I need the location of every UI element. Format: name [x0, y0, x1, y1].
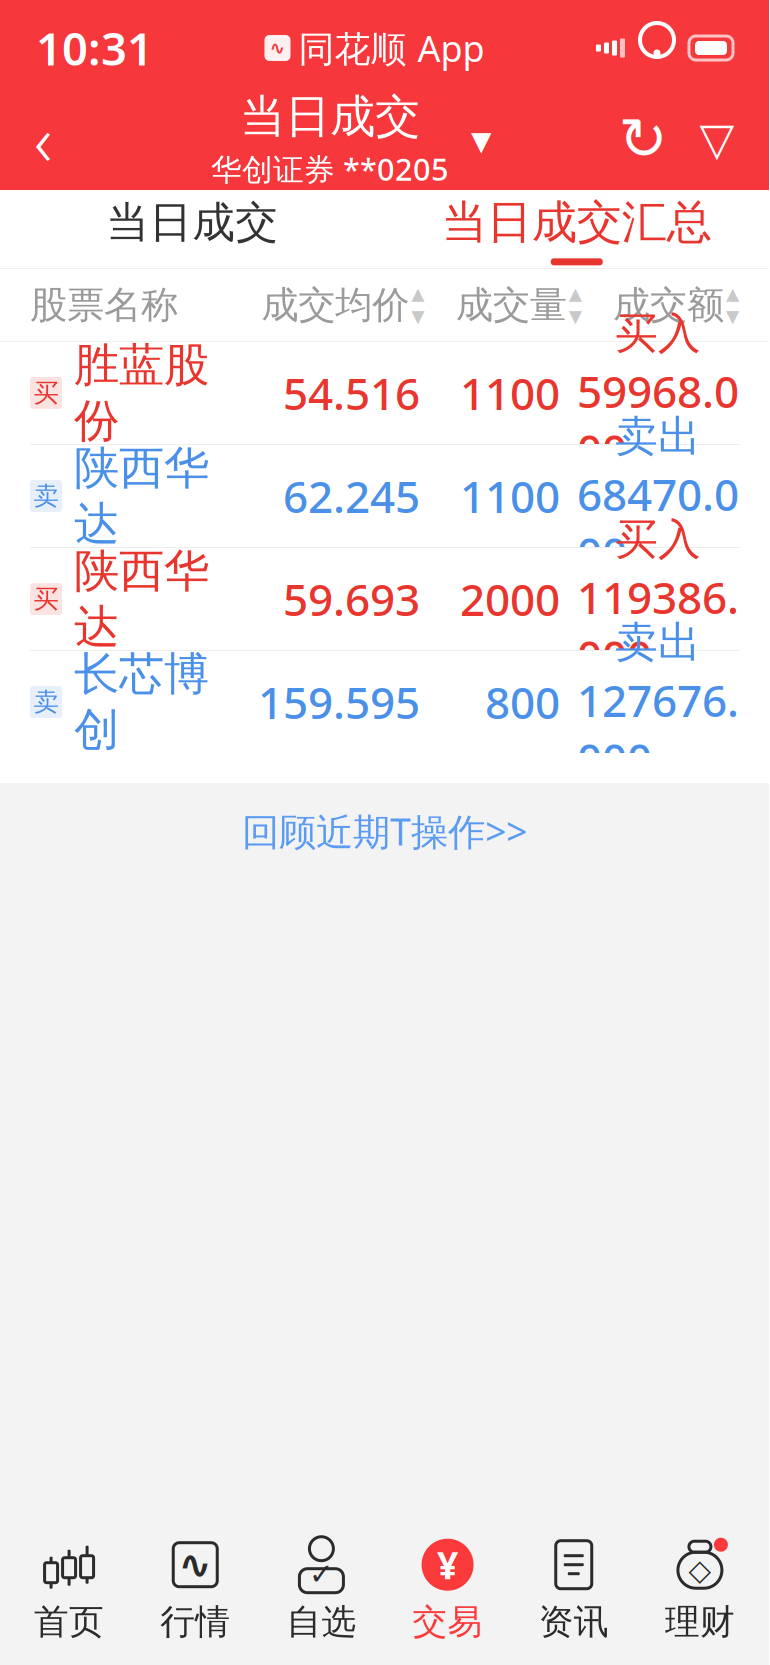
button[interactable]: 卖 [0, 651, 769, 753]
staticText: 卖 [33, 480, 58, 511]
staticText: 卖出 [615, 410, 701, 463]
staticText: 当日成交 [106, 196, 278, 249]
staticText: 买 [33, 583, 58, 614]
staticText: ∿ [269, 37, 285, 59]
staticText: 陕西华达 [74, 440, 209, 552]
staticText: ▼ [569, 306, 582, 326]
staticText: ▼ [471, 126, 492, 156]
staticText: ▼ [411, 306, 424, 326]
button[interactable]: ◇ [637, 1532, 763, 1648]
button[interactable]: 当日成交 [0, 190, 384, 268]
staticText: ◇ [688, 1554, 711, 1587]
staticText: 1100 [460, 364, 560, 422]
staticText: 119386.000 [577, 568, 739, 685]
staticText: 800 [485, 673, 560, 731]
staticText: 买入 [615, 513, 701, 566]
staticText: ∿ [178, 1542, 212, 1587]
button[interactable]: 卖 [0, 445, 769, 547]
staticText: 交易 [413, 1601, 483, 1643]
button[interactable]: 刷新 [617, 109, 669, 169]
staticText: 59968.000 [577, 362, 739, 479]
staticText: 2000 [460, 570, 560, 628]
button[interactable]: 买 [0, 548, 769, 650]
staticText: 成交额 [613, 282, 724, 328]
staticText: 长芯博创 [74, 646, 209, 758]
staticText: 127676.000 [577, 671, 739, 788]
button[interactable]: 当日成交汇总 [384, 190, 769, 268]
button[interactable]: 买 [0, 342, 769, 444]
staticText: 自选 [286, 1601, 356, 1643]
staticText: 华创证券 **0205 [211, 148, 449, 189]
staticText: ↻ [618, 106, 667, 172]
staticText: 54.516 [283, 364, 420, 422]
staticText: 陕西华达 [74, 543, 209, 655]
staticText: 59.693 [283, 570, 420, 628]
staticText: 成交均价 [261, 282, 409, 328]
staticText: 首页 [34, 1601, 104, 1643]
staticText: 68470.000 [577, 465, 739, 582]
button[interactable]: ∿ [132, 1532, 258, 1648]
staticText: 卖出 [615, 616, 701, 669]
staticText: 159.595 [258, 673, 420, 731]
button[interactable]: ✓ [258, 1532, 384, 1648]
staticText: 当日成交汇总 [442, 195, 712, 250]
staticText: 理财 [665, 1601, 735, 1643]
staticText: 胜蓝股份 [74, 337, 209, 449]
staticText: 同花顺 App [298, 24, 484, 72]
button[interactable]: ¥ [384, 1532, 511, 1648]
button[interactable]: 筛选 [695, 109, 739, 169]
staticText: ¥ [437, 1540, 458, 1589]
staticText: ▲ [411, 284, 424, 303]
button[interactable]: 返回 [0, 96, 86, 182]
staticText: 行情 [160, 1601, 230, 1643]
staticText: ‹ [34, 93, 52, 185]
staticText: 回顾近期T操作>> [242, 806, 527, 856]
staticText: 成交量 [456, 282, 567, 328]
staticText: ▲ [569, 284, 582, 303]
staticText: 当日成交 [240, 89, 420, 144]
staticText: 10:31 [36, 18, 153, 78]
staticText: 资讯 [539, 1601, 609, 1643]
staticText: 卖 [33, 686, 58, 717]
staticText: ✓ [309, 1557, 334, 1591]
button[interactable]: 首页 [6, 1532, 132, 1648]
staticText: ▼ [726, 306, 739, 326]
staticText: ▲ [726, 284, 739, 303]
staticText: 股票名称 [30, 282, 178, 328]
staticText: 买 [33, 377, 58, 408]
staticText: 买入 [615, 307, 701, 360]
staticText: ▽ [699, 113, 734, 165]
staticText: 62.245 [283, 467, 420, 525]
button[interactable]: 当日成交 [211, 89, 492, 189]
button[interactable]: 回顾近期T操作>> [0, 783, 769, 879]
button[interactable]: 资讯 [511, 1532, 637, 1648]
staticText: 1100 [460, 467, 560, 525]
